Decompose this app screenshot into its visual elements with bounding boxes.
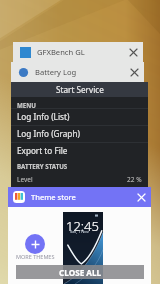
button[interactable]: CLOSE ALL bbox=[16, 265, 144, 279]
staticText: 22 % bbox=[127, 175, 142, 184]
button[interactable]: More themes bbox=[25, 234, 45, 254]
staticText: Export to File bbox=[17, 145, 68, 156]
staticText: MENU bbox=[17, 101, 37, 109]
button[interactable]: Export to File bbox=[11, 142, 148, 159]
button[interactable]: GFXBench GL bbox=[13, 42, 143, 62]
staticText: Sat, 1 Nov bbox=[70, 229, 89, 234]
button[interactable]: Battery Log bbox=[11, 62, 144, 82]
staticText: Theme store bbox=[31, 192, 76, 202]
button[interactable]: Start Service bbox=[11, 82, 148, 187]
staticText: Log Info (List) bbox=[17, 111, 70, 122]
staticText: Battery Log bbox=[35, 67, 77, 77]
button[interactable]: Close GFXBench GL bbox=[123, 42, 143, 62]
button[interactable]: Close Battery Log bbox=[124, 62, 144, 82]
button[interactable]: Log Info (Graph) bbox=[11, 125, 148, 142]
staticText: 12:45 bbox=[66, 217, 99, 235]
staticText: GFXBench GL bbox=[37, 47, 85, 57]
staticText: Log Info (Graph) bbox=[17, 128, 80, 139]
button[interactable]: Theme store bbox=[8, 187, 151, 207]
button[interactable]: Close Theme store bbox=[131, 187, 151, 207]
staticText: Level bbox=[17, 175, 33, 184]
staticText: CLOSE ALL bbox=[59, 267, 102, 278]
staticText: Start Service bbox=[56, 84, 104, 95]
button[interactable]: Log Info (List) bbox=[11, 108, 148, 125]
staticText: MORE THEMES bbox=[16, 253, 55, 260]
staticText: BATTERY STATUS bbox=[17, 162, 68, 170]
